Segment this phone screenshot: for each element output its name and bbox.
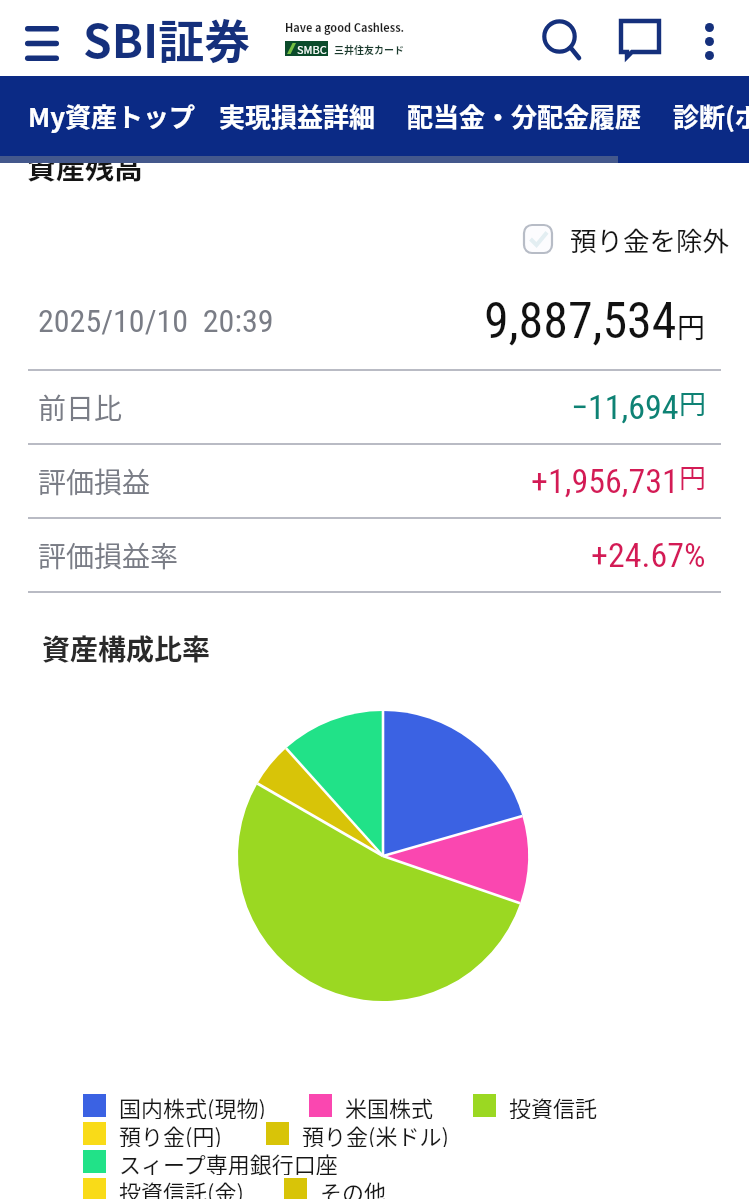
staticText: その他: [320, 1175, 387, 1199]
staticText: 預り金(米ドル): [302, 1119, 449, 1147]
staticText: 実現損益詳細: [219, 97, 376, 135]
staticText: SBI証券: [83, 5, 251, 72]
button[interactable]: My資産トップ: [28, 97, 196, 135]
button[interactable]: その他: [284, 1175, 387, 1199]
staticText: スィープ専用銀行口座: [119, 1147, 338, 1175]
staticText: 円: [679, 457, 706, 496]
button[interactable]: 国内株式(現物): [83, 1091, 266, 1119]
staticText: SMBC: [297, 41, 327, 56]
staticText: 評価損益: [38, 461, 151, 502]
staticText: 預り金を除外: [570, 220, 729, 258]
staticText: 国内株式(現物): [119, 1091, 266, 1119]
button[interactable]: More options: [679, 11, 739, 71]
staticText: 9,887,534: [484, 292, 677, 351]
staticText: 投資信託: [509, 1091, 598, 1119]
staticText: 2025/10/10 20:39: [38, 302, 274, 340]
button[interactable]: 預り金(米ドル): [266, 1119, 449, 1147]
staticText: 診断(ポ: [673, 97, 749, 135]
staticText: 配当金・分配金履歴: [407, 97, 642, 135]
staticText: Have a good Cashless.: [285, 19, 405, 35]
button[interactable]: 評価損益: [0, 445, 749, 517]
button[interactable]: 前日比: [0, 371, 749, 443]
staticText: 円: [679, 383, 706, 422]
staticText: My資産トップ: [28, 97, 196, 135]
button[interactable]: 預り金を除外: [523, 220, 729, 258]
staticText: −11,694: [571, 387, 679, 427]
button[interactable]: Search: [528, 6, 596, 74]
button[interactable]: 預り金(円): [83, 1119, 222, 1147]
staticText: 資産構成比率: [42, 628, 211, 669]
button[interactable]: 診断(ポ: [673, 97, 749, 135]
staticText: 投資信託(金): [119, 1175, 244, 1199]
button[interactable]: 米国株式: [309, 1091, 434, 1119]
staticText: 評価損益率: [38, 535, 179, 576]
staticText: 米国株式: [345, 1091, 434, 1119]
staticText: 三井住友カード: [334, 42, 404, 56]
button[interactable]: 実現損益詳細: [219, 97, 376, 135]
button[interactable]: 評価損益率: [0, 519, 749, 591]
staticText: 前日比: [38, 387, 123, 428]
button[interactable]: 配当金・分配金履歴: [407, 97, 642, 135]
button[interactable]: 投資信託: [473, 1091, 598, 1119]
staticText: 預り金(円): [119, 1119, 222, 1147]
button[interactable]: Menu: [9, 10, 75, 76]
button[interactable]: スィープ専用銀行口座: [83, 1147, 338, 1175]
button[interactable]: Messages: [605, 5, 673, 73]
staticText: +1,956,731: [531, 461, 679, 501]
button[interactable]: 投資信託(金): [83, 1175, 244, 1199]
staticText: +24.67%: [591, 535, 706, 575]
staticText: 円: [677, 306, 706, 347]
staticText: 資産残高: [27, 145, 144, 187]
